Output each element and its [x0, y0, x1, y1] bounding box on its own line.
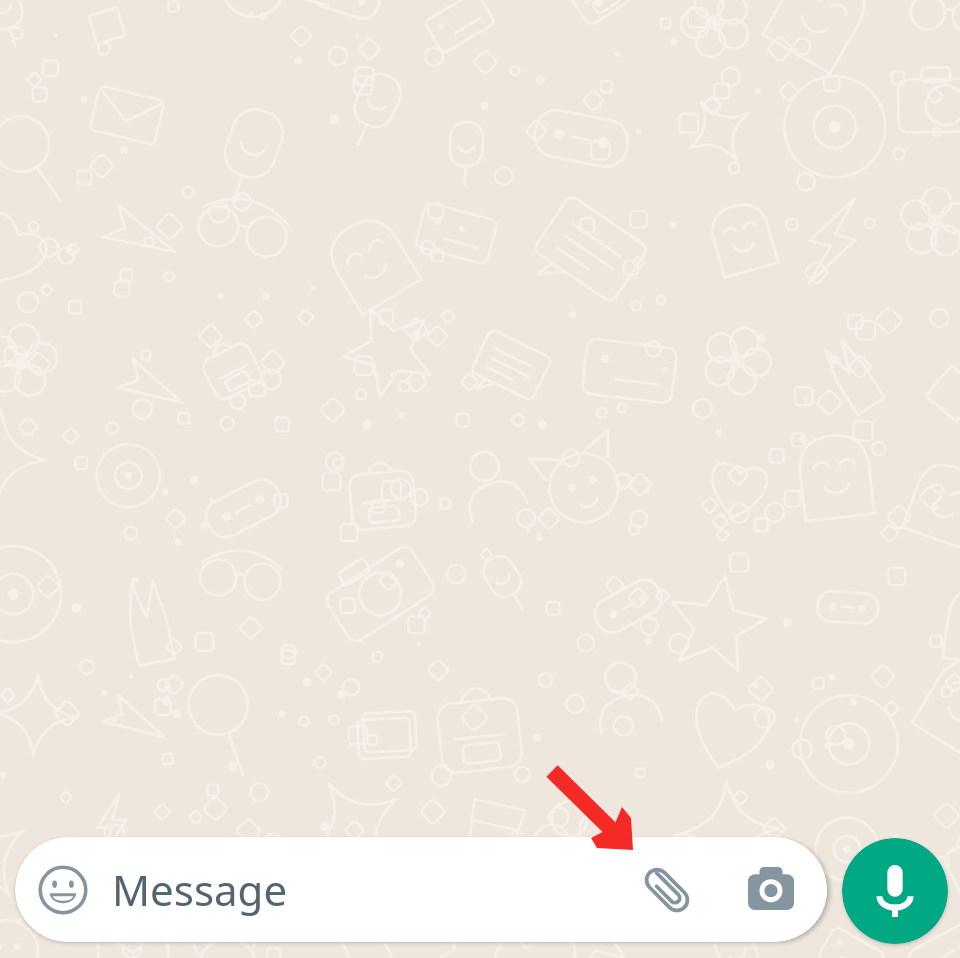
button[interactable]: Camera — [735, 854, 807, 926]
button[interactable]: Emoji — [30, 857, 96, 923]
button[interactable]: Voice message — [842, 838, 948, 944]
button[interactable]: Emoji — [15, 837, 827, 942]
staticText: Message — [112, 861, 288, 918]
button[interactable]: Attach — [631, 854, 703, 926]
